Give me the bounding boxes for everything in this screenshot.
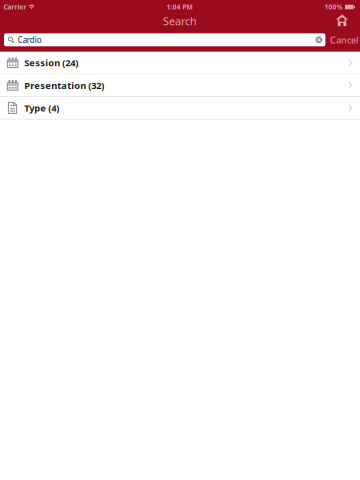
staticText: Type (4) — [24, 102, 59, 114]
staticText: Carrier — [3, 3, 26, 11]
staticText: Search — [163, 14, 197, 28]
staticText: Cancel — [330, 34, 358, 46]
staticText: 100% — [324, 3, 342, 11]
button[interactable]: Type (4) — [0, 97, 360, 120]
staticText: 1:04 PM — [166, 3, 192, 11]
button[interactable]: Home — [328, 14, 360, 30]
button[interactable]: Cancel — [325, 33, 360, 46]
staticText: Presentation (32) — [24, 79, 104, 91]
button[interactable]: Clear text — [312, 33, 322, 46]
button[interactable]: Presentation (32) — [0, 74, 360, 97]
button[interactable]: Session (24) — [0, 52, 360, 74]
staticText: Cardio — [18, 34, 42, 45]
staticText: Session (24) — [24, 56, 78, 69]
